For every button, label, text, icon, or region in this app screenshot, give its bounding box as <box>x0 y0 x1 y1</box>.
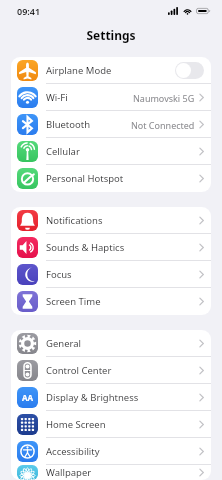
staticText: Notifications <box>46 214 103 227</box>
button[interactable]: Control Center <box>11 357 211 384</box>
button[interactable]: General <box>11 330 211 357</box>
staticText: Accessibility <box>46 445 100 458</box>
staticText: Screen Time <box>46 295 101 308</box>
staticText: Bluetooth <box>46 118 91 131</box>
button[interactable]: Screen Time <box>11 288 211 315</box>
staticText: Focus <box>46 268 72 281</box>
staticText: Personal Hotspot <box>46 172 124 185</box>
button[interactable]: Wi-Fi <box>11 84 211 111</box>
staticText: AA <box>22 392 34 403</box>
staticText: Naumovski 5G <box>133 92 195 104</box>
button[interactable]: Home Screen <box>11 411 211 438</box>
staticText: Control Center <box>46 364 112 377</box>
staticText: General <box>46 337 82 350</box>
staticText: Sounds & Haptics <box>46 241 125 254</box>
staticText: Display & Brightness <box>46 391 139 404</box>
staticText: Wallpaper <box>46 466 92 479</box>
button[interactable]: Airplane Mode <box>11 57 211 84</box>
staticText: Home Screen <box>46 418 106 431</box>
button[interactable]: AA <box>11 384 211 411</box>
button[interactable]: Bluetooth <box>11 111 211 138</box>
button[interactable]: Cellular <box>11 138 211 165</box>
staticText: Airplane Mode <box>46 64 112 77</box>
staticText: Settings <box>86 27 136 43</box>
staticText: Not Connected <box>131 119 195 131</box>
button[interactable]: Personal Hotspot <box>11 165 211 192</box>
staticText: Wi-Fi <box>46 91 68 104</box>
staticText: 09:41 <box>17 5 41 17</box>
staticText: Cellular <box>46 145 80 158</box>
button[interactable]: Notifications <box>11 207 211 234</box>
button[interactable]: Sounds & Haptics <box>11 234 211 261</box>
button[interactable]: Focus <box>11 261 211 288</box>
button[interactable]: Accessibility <box>11 438 211 465</box>
button[interactable]: Wallpaper <box>11 465 211 480</box>
